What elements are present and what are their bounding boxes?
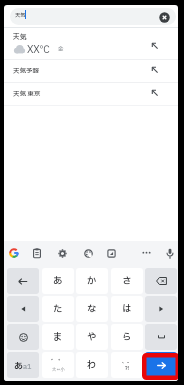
button[interactable] [7,296,39,322]
staticText: な [87,302,97,316]
button[interactable] [107,249,116,258]
button[interactable]: あ [42,268,74,294]
button[interactable]: 天気予報 [4,60,178,82]
button[interactable] [84,249,93,258]
button[interactable] [145,324,177,350]
staticText: 、。 [122,358,133,365]
button[interactable]: さ [111,268,143,294]
staticText: ゛ ゜ [51,358,65,367]
staticText: た [53,302,63,316]
staticText: 天気 東京 [13,89,41,99]
staticText: か [87,274,97,288]
button[interactable]: な [76,296,108,322]
button[interactable]: 天気 [10,8,176,25]
staticText: ま [53,330,63,344]
button[interactable] [9,248,19,258]
button[interactable]: ま [42,324,74,350]
staticText: わ [87,358,97,372]
button[interactable]: や [76,324,108,350]
button[interactable] [33,248,41,258]
button[interactable]: ゛ ゜ [42,352,74,378]
staticText: ら [122,330,132,344]
button[interactable]: 天気 [4,28,178,59]
staticText: 天気予報 [13,66,39,76]
button[interactable]: あa1 [7,352,39,378]
staticText: XX℃ [27,42,50,55]
button[interactable]: 、。 [111,352,143,378]
button[interactable] [145,296,177,322]
button[interactable]: ら [111,324,143,350]
button[interactable]: た [42,296,74,322]
staticText: は [122,302,132,316]
button[interactable]: か [76,268,108,294]
button[interactable] [7,268,39,294]
button[interactable]: 天気 東京 [4,83,178,105]
button[interactable] [7,324,39,350]
staticText: 大⇔小 [52,367,65,373]
button[interactable] [166,248,174,259]
button[interactable] [142,251,151,254]
staticText: 天気 [15,11,26,19]
button[interactable] [145,352,177,378]
button[interactable]: は [111,296,143,322]
staticText: あ [53,274,63,288]
staticText: さ [122,274,132,288]
button[interactable] [145,268,177,294]
staticText: ?! [125,365,130,372]
staticText: や [87,330,97,344]
button[interactable]: わ [76,352,108,378]
button[interactable] [58,249,67,258]
staticText: 金 [58,45,64,53]
staticText: 天気 [13,32,27,42]
button[interactable] [159,12,170,23]
staticText: あa1 [14,359,32,372]
